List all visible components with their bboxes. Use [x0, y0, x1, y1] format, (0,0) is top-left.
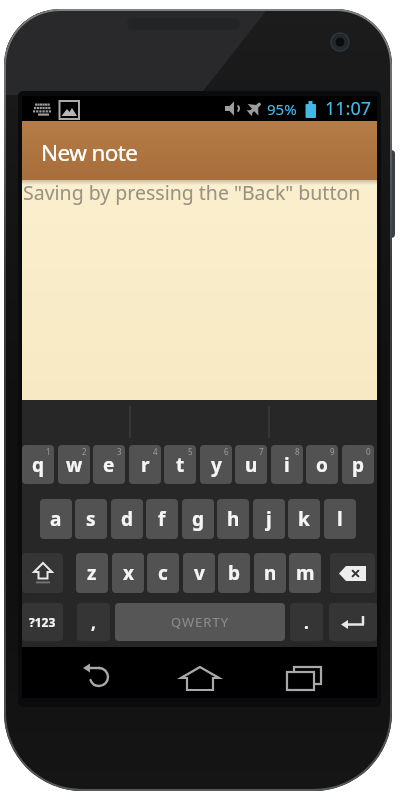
- staticText: 8: [295, 446, 300, 457]
- button[interactable]: p: [342, 445, 374, 484]
- staticText: v: [194, 560, 205, 586]
- button[interactable]: ?123: [22, 603, 63, 641]
- staticText: Saving by pressing the "Back" button: [23, 179, 361, 206]
- staticText: 7: [259, 446, 264, 457]
- staticText: 2: [82, 446, 87, 457]
- staticText: i: [284, 452, 290, 478]
- button[interactable]: n: [254, 553, 286, 593]
- staticText: z: [87, 560, 97, 586]
- button[interactable]: f: [146, 499, 178, 539]
- staticText: e: [103, 452, 115, 478]
- staticText: a: [50, 506, 62, 532]
- staticText: 11:07: [325, 96, 372, 121]
- button[interactable]: [274, 663, 334, 695]
- staticText: 0: [366, 446, 371, 457]
- staticText: l: [337, 506, 343, 532]
- button[interactable]: y: [200, 445, 232, 484]
- staticText: m: [296, 560, 315, 586]
- staticText: ?123: [29, 614, 56, 630]
- button[interactable]: q: [22, 445, 54, 484]
- button[interactable]: d: [111, 499, 143, 539]
- button[interactable]: v: [183, 553, 215, 593]
- button[interactable]: [329, 603, 377, 641]
- button[interactable]: r: [129, 445, 161, 484]
- staticText: j: [266, 506, 272, 532]
- button[interactable]: [22, 553, 63, 593]
- button[interactable]: i: [271, 445, 303, 484]
- button[interactable]: h: [217, 499, 249, 539]
- staticText: y: [211, 452, 222, 478]
- button[interactable]: o: [306, 445, 338, 484]
- button[interactable]: k: [288, 499, 320, 539]
- staticText: w: [66, 452, 83, 478]
- staticText: QWERTY: [171, 613, 230, 631]
- button[interactable]: [170, 663, 230, 695]
- staticText: o: [316, 452, 328, 478]
- button[interactable]: b: [218, 553, 250, 593]
- staticText: h: [227, 506, 240, 532]
- button[interactable]: c: [147, 553, 179, 593]
- staticText: d: [121, 506, 134, 532]
- staticText: .: [304, 611, 309, 634]
- button[interactable]: ,: [77, 603, 110, 641]
- button[interactable]: m: [289, 553, 321, 593]
- staticText: t: [176, 452, 185, 478]
- button[interactable]: .: [290, 603, 323, 641]
- staticText: s: [86, 506, 96, 532]
- staticText: n: [264, 560, 277, 586]
- staticText: x: [123, 560, 134, 586]
- staticText: r: [141, 452, 150, 478]
- staticText: 95%: [267, 99, 297, 119]
- staticText: p: [352, 452, 365, 478]
- staticText: 1: [46, 446, 51, 457]
- staticText: k: [298, 506, 310, 532]
- staticText: 3: [117, 446, 122, 457]
- button[interactable]: [330, 553, 375, 593]
- staticText: f: [158, 506, 166, 532]
- button[interactable]: [66, 663, 126, 695]
- button[interactable]: g: [182, 499, 214, 539]
- button[interactable]: u: [235, 445, 267, 484]
- staticText: g: [192, 506, 205, 532]
- button[interactable]: x: [112, 553, 144, 593]
- staticText: New note: [41, 137, 138, 168]
- staticText: ,: [91, 611, 96, 634]
- button[interactable]: a: [40, 499, 72, 539]
- staticText: q: [32, 452, 45, 478]
- button[interactable]: j: [253, 499, 285, 539]
- button[interactable]: New note: [22, 121, 377, 180]
- staticText: 4: [153, 446, 158, 457]
- button[interactable]: QWERTY: [115, 603, 285, 641]
- staticText: u: [245, 452, 258, 478]
- staticText: c: [158, 560, 168, 586]
- staticText: 6: [224, 446, 229, 457]
- staticText: 5: [188, 446, 193, 457]
- staticText: b: [228, 560, 241, 586]
- button[interactable]: t: [164, 445, 196, 484]
- button[interactable]: e: [93, 445, 125, 484]
- button[interactable]: l: [324, 499, 356, 539]
- button[interactable]: z: [76, 553, 108, 593]
- button[interactable]: Saving by pressing the "Back" button: [22, 180, 377, 400]
- button[interactable]: w: [58, 445, 90, 484]
- staticText: 9: [330, 446, 335, 457]
- button[interactable]: s: [75, 499, 107, 539]
